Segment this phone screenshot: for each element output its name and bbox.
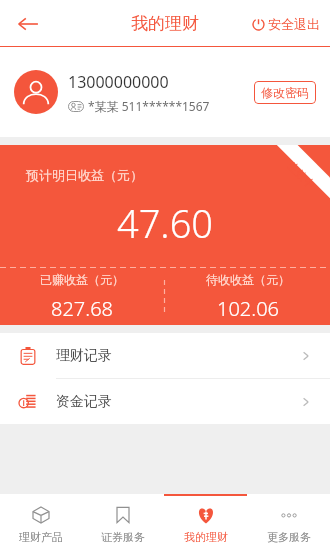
- staticText: 理财记录: [56, 347, 300, 365]
- staticText: 已赚收益（元）: [40, 272, 124, 287]
- button[interactable]: 理财产品: [0, 494, 82, 550]
- button[interactable]: Back: [8, 4, 48, 44]
- button[interactable]: 证券服务: [82, 494, 164, 550]
- staticText: 资金记录: [56, 393, 300, 411]
- staticText: *某某 511******1567: [88, 98, 210, 114]
- staticText: 更多服务: [267, 530, 311, 544]
- staticText: 理财产品: [19, 530, 63, 544]
- staticText: 待收收益（元）: [206, 272, 290, 287]
- button[interactable]: 理财记录: [0, 333, 330, 378]
- staticText: 安全退出: [268, 16, 320, 32]
- button[interactable]: 我的理财: [164, 494, 247, 550]
- button[interactable]: 更多服务: [247, 494, 330, 550]
- staticText: 102.06: [217, 295, 279, 322]
- staticText: 827.68: [51, 295, 113, 322]
- staticText: 我的理财: [184, 530, 228, 544]
- button[interactable]: 安全退出: [252, 16, 320, 32]
- button[interactable]: 修改密码: [254, 81, 316, 104]
- staticText: 生效中: [285, 158, 318, 192]
- button[interactable]: 资金记录: [0, 379, 330, 424]
- staticText: 预计明日收益（元）: [26, 167, 143, 183]
- staticText: 13000000000: [68, 71, 169, 93]
- staticText: 我的理财: [131, 13, 199, 34]
- staticText: 47.60: [0, 197, 330, 249]
- staticText: 证券服务: [101, 530, 145, 544]
- staticText: 修改密码: [261, 85, 309, 100]
